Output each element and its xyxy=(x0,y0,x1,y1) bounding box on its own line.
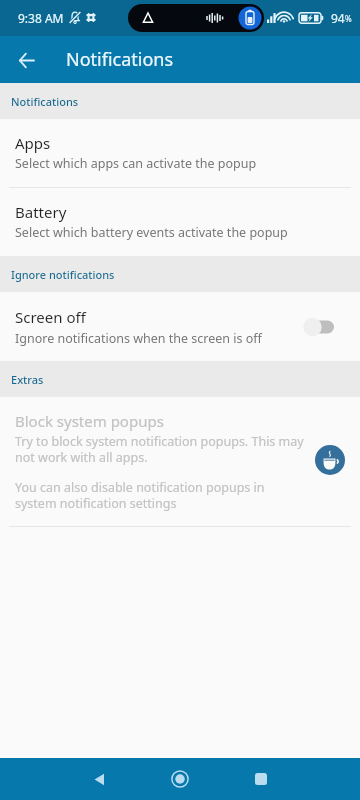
button[interactable]: Back xyxy=(77,758,121,800)
button[interactable]: Screen off toggle xyxy=(298,315,334,339)
staticText: Try to block system notification popups.… xyxy=(15,433,304,465)
staticText: Select which apps can activate the popup xyxy=(15,155,257,172)
button[interactable]: Back xyxy=(6,40,46,80)
staticText: Notifications xyxy=(11,94,79,109)
staticText: % xyxy=(345,13,352,24)
staticText: Screen off xyxy=(15,307,86,327)
button[interactable]: Battery xyxy=(0,188,360,256)
staticText: 94 xyxy=(331,10,345,26)
button[interactable]: Recent apps xyxy=(239,758,283,800)
button[interactable]: Apps xyxy=(0,119,360,187)
staticText: Select which battery events activate the… xyxy=(15,224,288,241)
button[interactable]: Coffee xyxy=(315,445,345,475)
staticText: Battery xyxy=(15,202,67,222)
staticText: 9:38 AM xyxy=(18,10,64,26)
staticText: You can also disable notification popups… xyxy=(15,479,265,511)
staticText: Notifications xyxy=(66,47,174,72)
staticText: Apps xyxy=(15,133,51,153)
button[interactable]: Screen off xyxy=(0,292,360,361)
staticText: Ignore notifications when the screen is … xyxy=(15,330,262,347)
button[interactable]: Home xyxy=(158,758,202,800)
staticText: Ignore notifications xyxy=(11,267,115,282)
staticText: Block system popups xyxy=(15,411,164,431)
staticText: Extras xyxy=(11,372,44,387)
